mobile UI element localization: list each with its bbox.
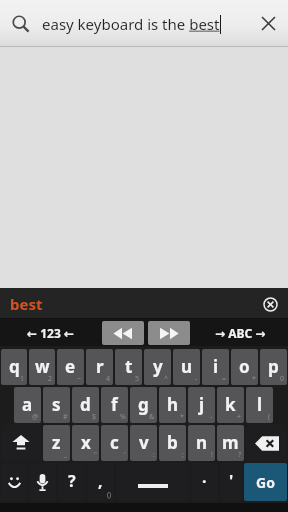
button[interactable]: o <box>231 349 258 385</box>
button[interactable]: best <box>8 291 45 317</box>
staticText: () <box>107 490 112 500</box>
button[interactable]: h <box>159 387 186 423</box>
staticText: ? <box>238 450 242 460</box>
staticText: Go <box>256 473 275 492</box>
staticText: i <box>213 355 219 378</box>
button[interactable]: b <box>159 425 186 461</box>
button[interactable]: q <box>1 349 27 385</box>
staticText: s <box>52 393 61 416</box>
button[interactable]: Go <box>244 463 287 501</box>
button[interactable]: z <box>43 425 70 461</box>
staticText: · <box>202 470 207 492</box>
button[interactable]: easy keyboard is the best <box>42 0 248 47</box>
staticText: ← 123 ← <box>27 325 74 341</box>
button[interactable]: t <box>115 349 142 385</box>
staticText: ; <box>182 450 184 460</box>
button[interactable]: x <box>72 425 99 461</box>
staticText: ' <box>124 450 126 460</box>
staticText: ~ <box>77 374 82 384</box>
staticText: h <box>167 393 179 416</box>
staticText: 1 <box>20 374 25 384</box>
staticText: r <box>96 355 104 378</box>
button[interactable]: · <box>191 463 218 501</box>
staticText: _ <box>64 450 68 460</box>
button[interactable]: r <box>86 349 113 385</box>
staticText: d <box>80 393 91 416</box>
button[interactable]: p <box>260 349 287 385</box>
button[interactable]: w <box>29 349 55 385</box>
staticText: & <box>149 412 155 422</box>
button[interactable]: Backspace <box>246 425 287 461</box>
staticText: 4 <box>106 374 111 384</box>
button[interactable]: g <box>130 387 157 423</box>
staticText: best <box>10 294 43 314</box>
button[interactable]: d <box>72 387 99 423</box>
button[interactable]: Move cursor right <box>148 321 190 345</box>
button[interactable]: i <box>202 349 229 385</box>
staticText: * <box>180 412 184 422</box>
button[interactable]: l <box>246 387 273 423</box>
button[interactable]: Voice input <box>29 463 56 501</box>
button[interactable]: Clear search <box>248 0 288 47</box>
staticText: ' <box>229 470 234 492</box>
staticText: q <box>9 355 20 378</box>
staticText: @ <box>32 412 39 422</box>
button[interactable]: j <box>188 387 215 423</box>
staticText: f <box>111 393 118 416</box>
staticText: t <box>125 355 133 378</box>
staticText: ( <box>268 412 271 422</box>
button[interactable]: ? <box>58 463 85 501</box>
button[interactable]: n <box>188 425 215 461</box>
button[interactable]: Space <box>116 463 189 501</box>
staticText: * <box>252 374 256 384</box>
button[interactable]: Shift <box>1 425 41 461</box>
button[interactable]: Close suggestions <box>258 292 282 316</box>
staticText: g <box>138 393 149 416</box>
button[interactable]: Move cursor left <box>102 321 144 345</box>
button[interactable]: v <box>130 425 157 461</box>
staticText: k <box>225 393 236 416</box>
staticText: ^ <box>164 374 169 384</box>
staticText: z <box>52 431 61 454</box>
staticText: + <box>237 412 242 422</box>
staticText: 0 <box>280 374 285 384</box>
staticText: - <box>195 374 198 384</box>
button[interactable]: ' <box>220 463 242 501</box>
staticText: easy keyboard is the best <box>42 14 220 34</box>
button[interactable]: c <box>101 425 128 461</box>
button[interactable]: Search <box>0 0 42 47</box>
button[interactable]: u <box>173 349 200 385</box>
button[interactable]: a <box>14 387 41 423</box>
staticText: → ABC → <box>215 325 266 341</box>
staticText: " <box>94 450 97 460</box>
button[interactable]: f <box>101 387 128 423</box>
staticText: w <box>35 355 50 378</box>
button[interactable]: e <box>57 349 84 385</box>
staticText: p <box>268 355 279 378</box>
staticText: ! <box>211 450 213 460</box>
staticText: 5 <box>135 374 140 384</box>
staticText: l <box>257 393 263 416</box>
button[interactable]: → ABC → <box>192 319 288 346</box>
staticText: e <box>65 355 76 378</box>
staticText: o <box>239 355 250 378</box>
button[interactable]: Emoji <box>1 463 27 501</box>
staticText: = <box>222 374 227 384</box>
button[interactable]: s <box>43 387 70 423</box>
button[interactable]: , <box>87 463 114 501</box>
staticText: # <box>63 412 68 422</box>
staticText: : <box>153 450 155 460</box>
button[interactable]: m <box>217 425 244 461</box>
staticText: v <box>139 431 149 454</box>
button[interactable]: y <box>144 349 171 385</box>
staticText: n <box>196 431 208 454</box>
staticText: - <box>210 412 213 422</box>
staticText: % <box>120 412 126 422</box>
staticText: $ <box>92 412 97 422</box>
button[interactable]: ← 123 ← <box>0 319 100 346</box>
staticText: b <box>167 431 178 454</box>
staticText: , <box>98 470 103 492</box>
button[interactable]: k <box>217 387 244 423</box>
staticText: a <box>22 393 33 416</box>
staticText: ? <box>68 470 76 492</box>
